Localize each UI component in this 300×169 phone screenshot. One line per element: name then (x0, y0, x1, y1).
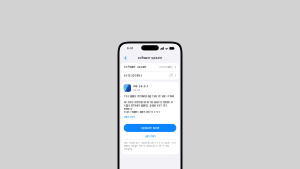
button[interactable]: Software Update (121, 63, 179, 71)
staticText: 9:41 (127, 47, 133, 50)
staticText: Software update (137, 56, 162, 60)
staticText: Off (169, 74, 173, 77)
staticText: Learn more (124, 115, 135, 118)
staticText: Automatic (159, 65, 173, 69)
staticText: iOS 26.0.1 (133, 85, 148, 88)
button[interactable]: Learn more (124, 115, 135, 118)
staticText: This update introduces bug fixes for you… (124, 95, 175, 98)
button[interactable]: Learn more (124, 135, 176, 138)
button[interactable]: Update Now (124, 124, 176, 132)
staticText: Update Now (141, 126, 159, 129)
staticText: Learn more (144, 135, 155, 138)
staticText: For more information on the security con… (124, 101, 173, 110)
button[interactable]: Beta Updates (121, 71, 179, 80)
staticText: 1.12 GB (133, 89, 140, 91)
button[interactable]: Back (122, 54, 129, 62)
staticText: https://support.apple.com/100100 (124, 110, 161, 113)
staticText: Your iPhone will automatically try to in… (124, 142, 176, 150)
staticText: Software Update (124, 65, 147, 69)
staticText: Beta Updates (124, 74, 142, 77)
